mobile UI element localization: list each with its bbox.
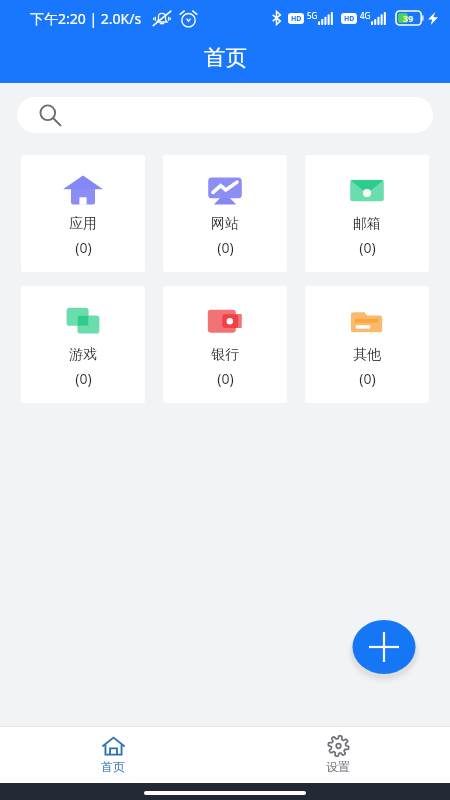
staticText: 39 [403, 12, 414, 24]
staticText: 首页 [101, 759, 125, 774]
staticText: 其他 [353, 346, 381, 364]
staticText: HD [344, 14, 355, 24]
button[interactable]: Add [348, 614, 420, 680]
staticText: 游戏 [69, 346, 97, 364]
button[interactable]: 其他 [305, 286, 429, 403]
staticText: 首页 [204, 44, 247, 71]
button[interactable]: Search [17, 97, 433, 133]
staticText: 设置 [326, 759, 350, 774]
button[interactable]: 应用 [21, 155, 145, 272]
staticText: 4G [360, 10, 371, 21]
button[interactable]: 首页 [73, 731, 153, 779]
button[interactable]: 银行 [163, 286, 287, 403]
staticText: 银行 [211, 346, 239, 364]
staticText: 下午2:20 | 2.0K/s [30, 9, 142, 28]
button[interactable]: 设置 [298, 731, 378, 779]
staticText: 邮箱 [353, 215, 381, 233]
staticText: (0) [359, 369, 376, 388]
staticText: (0) [75, 369, 92, 388]
staticText: 网站 [211, 215, 239, 233]
staticText: (0) [359, 238, 376, 257]
button[interactable]: 网站 [163, 155, 287, 272]
staticText: 应用 [69, 215, 97, 233]
staticText: (0) [217, 238, 234, 257]
staticText: 5G [307, 10, 318, 21]
button[interactable]: 游戏 [21, 286, 145, 403]
staticText: HD [291, 14, 302, 24]
button[interactable]: 邮箱 [305, 155, 429, 272]
staticText: (0) [75, 238, 92, 257]
staticText: (0) [217, 369, 234, 388]
